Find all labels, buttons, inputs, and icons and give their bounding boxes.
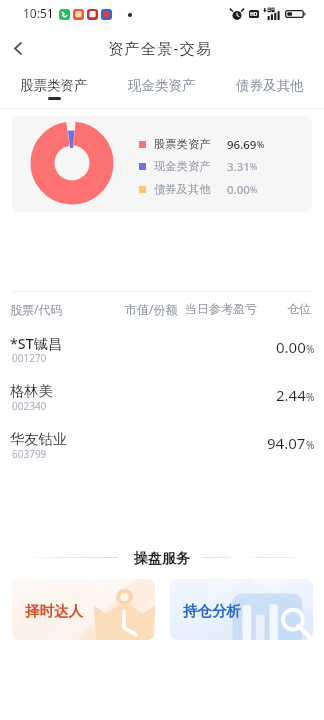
staticText: 债券及其他 (236, 77, 304, 94)
staticText: 现金类资产 (128, 77, 196, 94)
staticText: 001270 (12, 351, 47, 365)
staticText: 市值/份额 (125, 301, 178, 317)
staticText: 格林美 (10, 382, 53, 400)
staticText: 0.00 (276, 337, 306, 357)
button[interactable]: 股票类资产 (0, 66, 108, 108)
staticText: 当日参考盈亏 (185, 301, 257, 316)
staticText: 3.31 (227, 159, 250, 173)
staticText: 96.69 (227, 137, 257, 151)
staticText: 股票类资产 (20, 77, 88, 94)
button[interactable]: 债券及其他 (216, 66, 324, 108)
staticText: HD (250, 11, 258, 18)
staticText: 94.07 (267, 433, 306, 453)
button[interactable]: 格林美 (0, 376, 324, 424)
staticText: 2.44 (276, 385, 306, 405)
staticText: 华友钴业 (10, 430, 68, 448)
staticText: 择时达人 (25, 602, 83, 620)
staticText: 仓位 (287, 301, 311, 316)
button[interactable]: 持仓分析 (170, 579, 313, 640)
button[interactable]: 华友钴业 (0, 424, 324, 472)
button[interactable]: 择时达人 (12, 579, 155, 640)
button[interactable]: Back (0, 30, 36, 66)
staticText: % (250, 161, 258, 173)
staticText: 0.00 (227, 182, 250, 196)
button[interactable]: 现金类资产 (108, 66, 216, 108)
staticText: 债券及其他 (154, 182, 211, 196)
staticText: % (306, 342, 315, 356)
staticText: 10:51 (23, 5, 54, 21)
staticText: % (250, 184, 258, 196)
staticText: 资产全景-交易 (108, 38, 213, 58)
staticText: 持仓分析 (183, 602, 241, 620)
staticText: % (306, 390, 315, 404)
button[interactable]: *ST铖昌 (0, 328, 324, 376)
staticText: 操盘服务 (134, 550, 190, 568)
staticText: 股票类资产 (154, 137, 211, 151)
staticText: 现金类资产 (154, 159, 211, 173)
staticText: *ST铖昌 (10, 334, 63, 354)
staticText: % (306, 438, 315, 452)
staticText: % (257, 139, 265, 151)
staticText: 603799 (12, 447, 47, 461)
staticText: 股票/代码 (10, 301, 63, 317)
staticText: 002340 (12, 399, 47, 413)
